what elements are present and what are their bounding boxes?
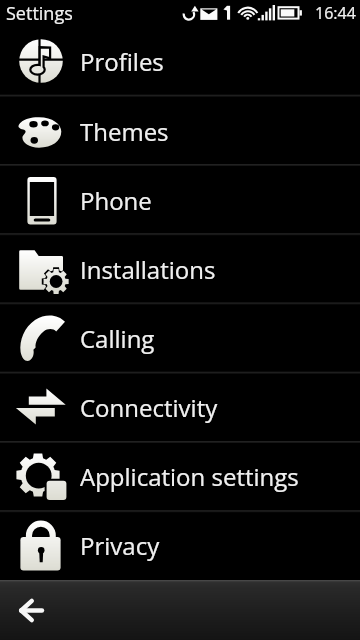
staticText: Installations (80, 253, 216, 286)
button[interactable]: Calling (0, 304, 360, 373)
staticText: 16:44 (315, 2, 356, 24)
staticText: Application settings (80, 460, 299, 493)
staticText: Connectivity (80, 391, 218, 424)
staticText: Profiles (80, 45, 164, 78)
staticText: Privacy (80, 529, 160, 562)
staticText: Themes (80, 115, 169, 148)
button[interactable]: Installations (0, 235, 360, 304)
button[interactable]: Application settings (0, 442, 360, 511)
button[interactable]: Profiles (0, 26, 360, 96)
staticText: Calling (80, 322, 155, 355)
button[interactable]: Back (5, 584, 57, 636)
button[interactable]: Privacy (0, 511, 360, 580)
button[interactable]: Phone (0, 166, 360, 235)
staticText: Settings (6, 1, 73, 26)
staticText: Phone (80, 184, 152, 217)
button[interactable]: Connectivity (0, 373, 360, 442)
button[interactable]: Themes (0, 96, 360, 166)
